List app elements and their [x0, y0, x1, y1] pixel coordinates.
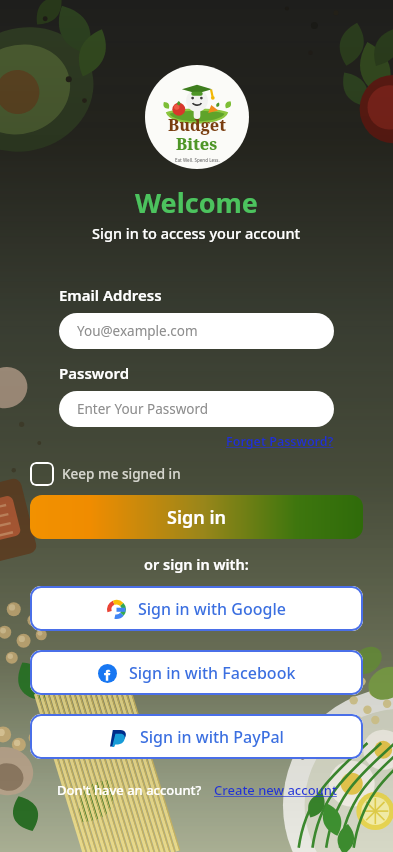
staticText: or sign in with: — [144, 554, 249, 574]
staticText: Sign in to access your account — [92, 223, 301, 243]
staticText: Password — [59, 363, 130, 383]
staticText: You@example.com — [77, 322, 198, 340]
button[interactable]: Password field — [59, 391, 334, 427]
staticText: Sign in with Facebook — [129, 662, 296, 684]
staticText: Sign in — [167, 505, 227, 530]
button[interactable]: Sign in with PayPal — [30, 714, 363, 759]
button[interactable]: Keep me signed in — [30, 462, 181, 486]
staticText: Budget — [168, 114, 226, 136]
staticText: Bites — [176, 133, 218, 155]
button[interactable]: Sign in with Google — [30, 586, 363, 631]
button[interactable]: Create new account — [214, 781, 337, 799]
button[interactable]: Sign in with Facebook — [30, 650, 363, 695]
staticText: Sign in with Google — [138, 598, 286, 620]
button[interactable]: Sign in — [30, 495, 363, 539]
staticText: Welcome — [135, 184, 258, 221]
staticText: Keep me signed in — [62, 465, 181, 483]
staticText: Sign in with PayPal — [140, 726, 284, 748]
staticText: Eat Well. Spend Less. — [175, 157, 220, 163]
staticText: Enter Your Password — [77, 400, 209, 418]
staticText: Don't have an account? — [57, 781, 202, 799]
button[interactable]: Forget Password? — [226, 433, 334, 450]
button[interactable]: Email Address field — [59, 313, 334, 349]
staticText: Email Address — [59, 285, 162, 305]
